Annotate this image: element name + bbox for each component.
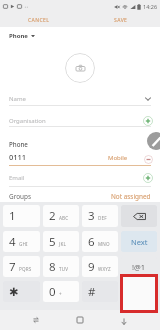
button[interactable]: Name: [0, 93, 160, 105]
staticText: Not assigned: [111, 192, 151, 201]
button[interactable]: 3: [82, 205, 118, 227]
staticText: MNO: [98, 241, 110, 247]
staticText: 0111: [9, 152, 27, 162]
button[interactable]: ✱: [3, 281, 40, 302]
staticText: 3: [88, 208, 95, 224]
button[interactable]: 7: [3, 256, 40, 277]
button[interactable]: 2: [43, 205, 79, 227]
button[interactable]: 8: [43, 256, 79, 277]
button[interactable]: Add: [143, 173, 153, 183]
staticText: 5: [49, 234, 56, 250]
button[interactable]: Add: [143, 116, 153, 126]
button[interactable]: Home: [69, 310, 91, 330]
button[interactable]: 9: [82, 256, 118, 277]
staticText: PQRS: [19, 266, 32, 272]
staticText: 6: [88, 234, 95, 250]
button[interactable]: 0: [43, 281, 79, 302]
staticText: SAVE: [114, 17, 128, 24]
staticText: +: [59, 291, 62, 297]
staticText: CANCEL: [28, 17, 50, 24]
staticText: WXYZ: [98, 266, 111, 272]
staticText: Next: [131, 237, 148, 247]
staticText: Phone: [9, 140, 28, 148]
button[interactable]: Email: [0, 172, 160, 184]
staticText: 1: [9, 208, 16, 224]
staticText: TUV: [59, 266, 69, 272]
staticText: Phone: [9, 32, 28, 40]
button[interactable]: CANCEL: [0, 13, 78, 27]
staticText: 7: [9, 259, 16, 275]
button[interactable]: Add photo: [65, 53, 95, 83]
staticText: DEF: [98, 215, 107, 221]
button[interactable]: Remove: [143, 154, 153, 164]
staticText: JKL: [59, 241, 66, 247]
button[interactable]: !@1: [121, 256, 157, 277]
staticText: ABC: [59, 215, 69, 221]
staticText: ✱: [9, 285, 19, 298]
button[interactable]: #: [82, 281, 118, 302]
staticText: Organisation: [9, 117, 46, 125]
button[interactable]: Groups: [0, 190, 160, 202]
staticText: 0: [49, 284, 56, 300]
button[interactable]: 6: [82, 231, 118, 252]
staticText: Mobile: [108, 154, 128, 162]
button[interactable]: 4: [3, 231, 40, 252]
staticText: Email: [9, 174, 25, 182]
button[interactable]: Expand name: [143, 94, 153, 104]
button[interactable]: SAVE: [82, 13, 160, 27]
staticText: Groups: [9, 192, 31, 201]
button[interactable]: Next: [121, 231, 157, 252]
button[interactable]: 1: [3, 205, 40, 227]
button[interactable]: Mobile: [108, 152, 128, 164]
button[interactable]: Recents: [25, 310, 47, 330]
button[interactable]: Edit: [147, 132, 160, 150]
staticText: 2: [49, 208, 56, 224]
button[interactable]: [121, 205, 157, 227]
button[interactable]: Hide keyboard: [113, 311, 135, 330]
button[interactable]: Phone: [0, 29, 160, 43]
staticText: Name: [9, 95, 26, 103]
button[interactable]: 5: [43, 231, 79, 252]
button[interactable]: [121, 281, 157, 302]
staticText: 8: [49, 259, 56, 275]
staticText: 9: [88, 259, 95, 275]
button[interactable]: Organisation: [0, 115, 160, 127]
staticText: 4: [9, 234, 16, 250]
staticText: !@1: [132, 262, 146, 272]
staticText: GHI: [19, 241, 28, 247]
staticText: #: [88, 284, 96, 300]
staticText: 14:26: [143, 3, 158, 10]
